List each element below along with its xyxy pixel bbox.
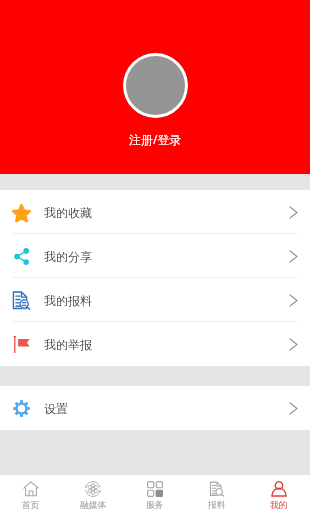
button[interactable]: 首页 bbox=[0, 475, 62, 516]
staticText: 我的举报 bbox=[44, 337, 92, 352]
staticText: 首页 bbox=[22, 500, 40, 511]
staticText: 注册/登录 bbox=[129, 131, 182, 147]
staticText: 设置 bbox=[44, 401, 68, 416]
button[interactable]: 我的分享 bbox=[0, 234, 310, 278]
staticText: 我的报料 bbox=[44, 293, 92, 308]
button[interactable]: 我的 bbox=[248, 475, 310, 516]
button[interactable]: 融媒体 bbox=[62, 475, 124, 516]
button[interactable]: 设置 bbox=[0, 386, 310, 430]
staticText: 我的收藏 bbox=[44, 205, 92, 220]
staticText: 我的 bbox=[270, 500, 288, 511]
staticText: 服务 bbox=[146, 500, 164, 511]
staticText: 报料 bbox=[208, 500, 226, 511]
button[interactable]: 注册/登录 bbox=[115, 127, 196, 151]
button[interactable]: 报料 bbox=[186, 475, 248, 516]
button[interactable]: 服务 bbox=[124, 475, 186, 516]
staticText: 我的分享 bbox=[44, 249, 92, 264]
button[interactable]: 我的报料 bbox=[0, 278, 310, 322]
button[interactable]: 我的举报 bbox=[0, 322, 310, 366]
button[interactable]: 我的收藏 bbox=[0, 190, 310, 234]
button[interactable]: User avatar bbox=[123, 53, 188, 118]
staticText: 融媒体 bbox=[80, 500, 107, 511]
